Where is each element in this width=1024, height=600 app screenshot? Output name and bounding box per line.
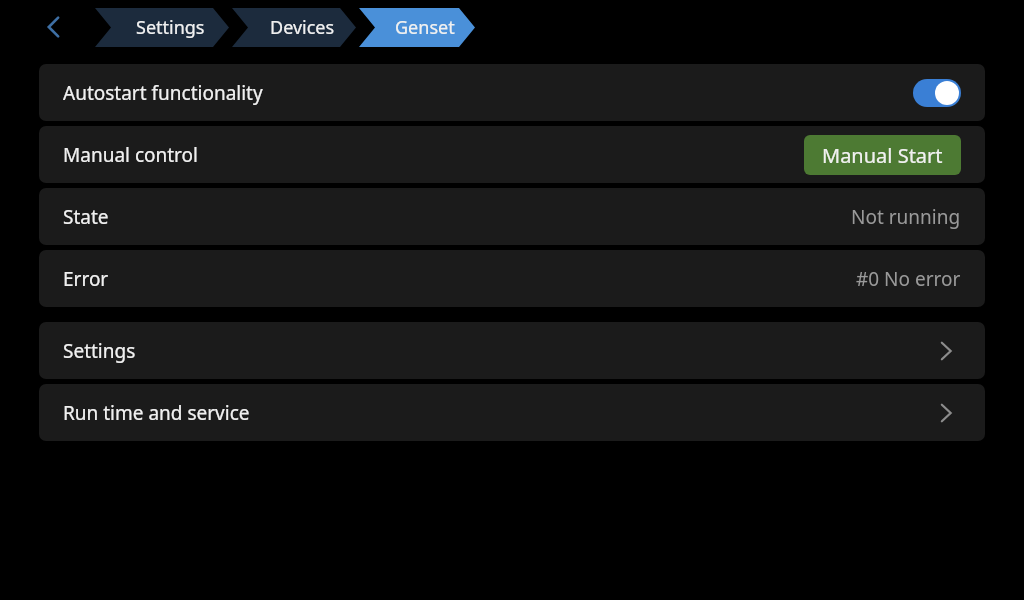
- staticText: Devices: [270, 15, 335, 40]
- button[interactable]: Manual control: [39, 126, 985, 183]
- button[interactable]: Settings: [39, 322, 985, 379]
- button[interactable]: Manual Start: [804, 135, 961, 175]
- staticText: Not running: [851, 204, 961, 230]
- button[interactable]: Autostart functionality toggle: [913, 79, 961, 107]
- staticText: Error: [63, 266, 109, 292]
- button[interactable]: Autostart functionality: [39, 64, 985, 121]
- staticText: State: [63, 204, 109, 230]
- staticText: Settings: [136, 15, 205, 40]
- staticText: Manual Start: [822, 142, 943, 169]
- staticText: Autostart functionality: [63, 80, 263, 106]
- staticText: Run time and service: [63, 400, 250, 426]
- button[interactable]: Run time and service: [39, 384, 985, 441]
- staticText: #0 No error: [856, 266, 961, 292]
- staticText: Genset: [395, 15, 455, 40]
- button[interactable]: Settings: [95, 8, 229, 47]
- button[interactable]: Back: [34, 7, 74, 47]
- button[interactable]: State: [39, 188, 985, 245]
- staticText: Settings: [63, 338, 136, 364]
- staticText: Manual control: [63, 142, 198, 168]
- button[interactable]: Error: [39, 250, 985, 307]
- button[interactable]: Devices: [232, 8, 356, 47]
- button[interactable]: Genset: [359, 8, 475, 47]
